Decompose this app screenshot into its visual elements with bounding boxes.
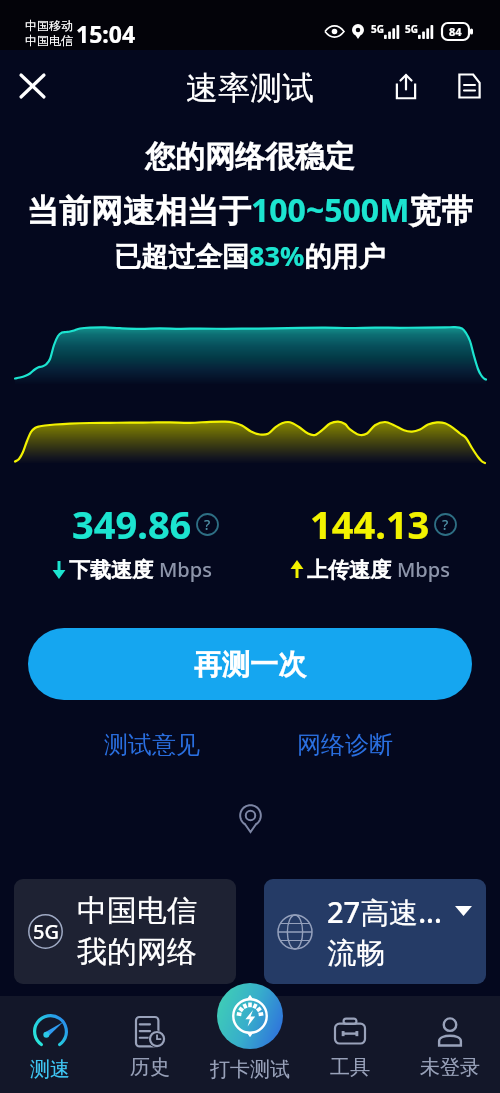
staticText: 349.86 — [72, 498, 192, 550]
staticText: 中国电信 — [25, 33, 73, 48]
button[interactable]: 再测一次 — [28, 628, 472, 700]
staticText: 中国移动 — [25, 18, 73, 33]
staticText: 84 — [449, 24, 462, 39]
staticText: 5G — [33, 918, 59, 945]
staticText: 我的网络 — [77, 933, 197, 971]
staticText: 工具 — [330, 1055, 370, 1080]
button[interactable]: 历史 — [100, 996, 200, 1093]
button[interactable]: Help — [433, 512, 457, 536]
button[interactable]: 网络诊断 — [289, 722, 401, 768]
staticText: 未登录 — [420, 1055, 480, 1080]
staticText: 您的网络很稳定 — [145, 138, 355, 176]
button[interactable]: Share — [382, 62, 430, 110]
staticText: 历史 — [130, 1055, 170, 1080]
staticText: 下载速度 — [69, 557, 153, 583]
button[interactable]: Report — [445, 62, 493, 110]
button[interactable]: Help — [195, 512, 219, 536]
staticText: 15:04 — [76, 18, 136, 49]
button[interactable]: Location — [230, 798, 270, 838]
staticText: 测试意见 — [104, 730, 200, 760]
staticText: 中国电信 — [77, 892, 197, 930]
button[interactable]: 测速 — [0, 996, 100, 1093]
button[interactable]: 测试意见 — [96, 722, 208, 768]
staticText: Mbps — [159, 556, 212, 583]
staticText: 当前网速相当于100~500M宽带 — [27, 188, 474, 232]
staticText: 5G — [405, 22, 418, 36]
staticText: 5G — [371, 22, 384, 36]
staticText: 上传速度 — [307, 557, 391, 583]
staticText: 测速 — [30, 1057, 70, 1082]
staticText: 流畅 — [327, 935, 385, 972]
staticText: 速率测试 — [186, 68, 314, 108]
staticText: 已超过全国83%的用户 — [114, 237, 386, 274]
button[interactable]: 未登录 — [400, 996, 500, 1093]
staticText: 网络诊断 — [297, 730, 393, 760]
staticText: ? — [204, 515, 211, 534]
staticText: 再测一次 — [194, 647, 306, 682]
button[interactable]: 工具 — [300, 996, 400, 1093]
button[interactable]: Close — [8, 62, 56, 110]
staticText: Mbps — [397, 556, 450, 583]
staticText: ? — [442, 515, 449, 534]
staticText: 144.13 — [310, 498, 430, 550]
button[interactable]: 打卡测试 — [200, 983, 300, 1082]
staticText: 27高速... — [327, 892, 442, 932]
button[interactable]: 5G — [14, 879, 236, 984]
staticText: 打卡测试 — [210, 1057, 290, 1082]
button[interactable]: 27高速... — [264, 879, 486, 984]
